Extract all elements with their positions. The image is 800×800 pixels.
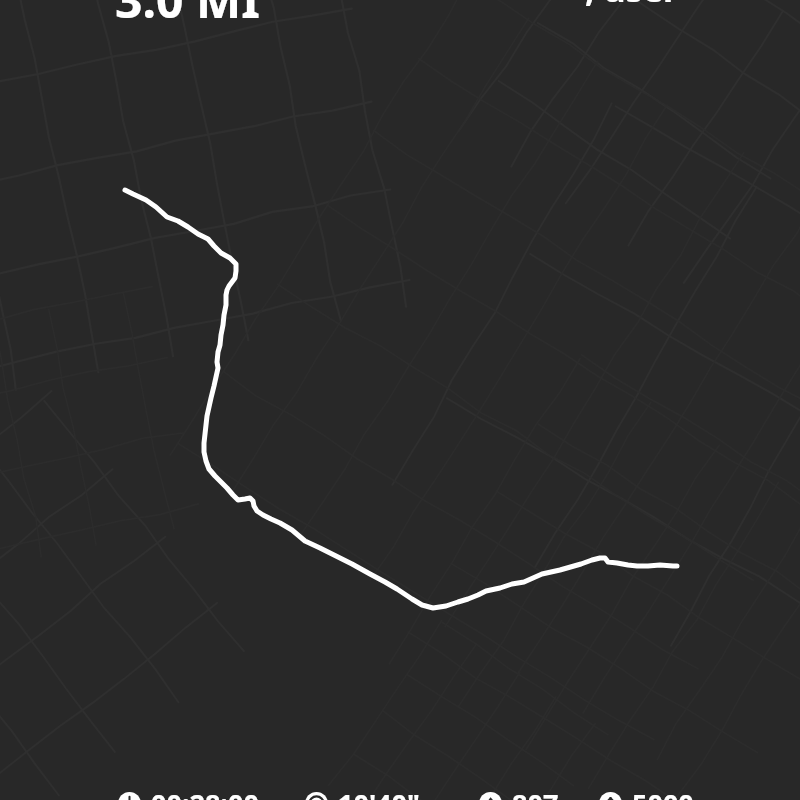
button[interactable]: 3.0 MI	[115, 0, 260, 32]
button[interactable]: Average pace 10'40"	[305, 792, 420, 800]
button[interactable]: , user	[585, 0, 679, 12]
button[interactable]: Duration 00:28:00	[118, 792, 259, 800]
button[interactable]: 807 calories	[479, 792, 559, 800]
button[interactable]: 5000 steps	[599, 792, 694, 800]
staticText: 10'40"	[338, 785, 420, 800]
staticText: 807	[512, 785, 559, 800]
staticText: 5000	[632, 785, 694, 800]
button[interactable]: Route map	[0, 0, 800, 800]
staticText: 00:28:00	[151, 785, 259, 800]
